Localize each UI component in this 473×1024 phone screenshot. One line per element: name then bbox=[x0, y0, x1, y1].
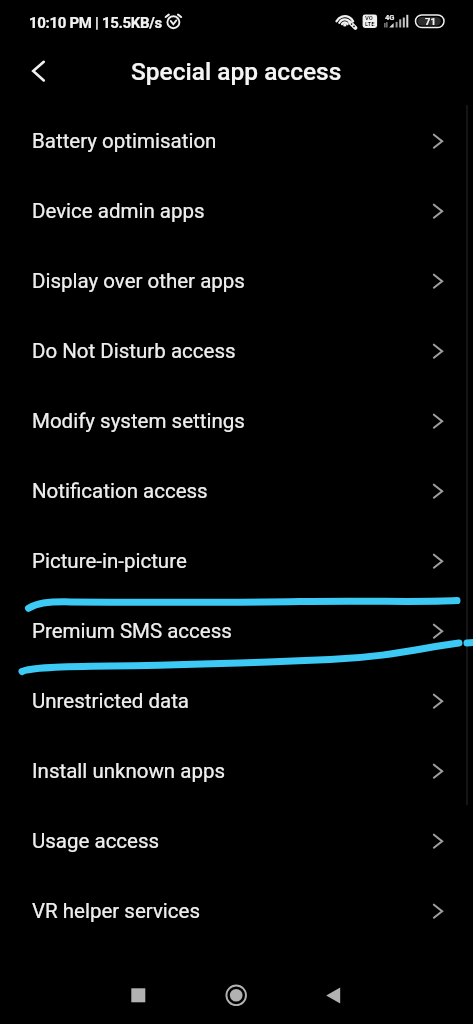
staticText: Notification access bbox=[32, 479, 208, 503]
button[interactable]: Home bbox=[216, 975, 256, 1015]
button[interactable]: Unrestricted data bbox=[0, 666, 473, 736]
staticText: VR helper services bbox=[32, 899, 201, 923]
staticText: Battery optimisation bbox=[32, 129, 217, 153]
staticText: Display over other apps bbox=[32, 269, 245, 293]
staticText: Picture-in-picture bbox=[32, 549, 187, 573]
staticText: Do Not Disturb access bbox=[32, 339, 236, 363]
staticText: Usage access bbox=[32, 829, 160, 853]
button[interactable]: Back bbox=[313, 975, 353, 1015]
button[interactable]: Picture-in-picture bbox=[0, 526, 473, 596]
button[interactable]: Usage access bbox=[0, 806, 473, 876]
button[interactable]: VR helper services bbox=[0, 876, 473, 946]
staticText: 4G bbox=[385, 13, 395, 22]
button[interactable]: Notification access bbox=[0, 456, 473, 526]
staticText: 71 bbox=[425, 16, 436, 27]
button[interactable]: Battery optimisation bbox=[0, 106, 473, 176]
button[interactable]: Recent apps bbox=[118, 975, 158, 1015]
staticText: Install unknown apps bbox=[32, 759, 225, 783]
staticText: LTE bbox=[365, 21, 375, 28]
staticText: Premium SMS access bbox=[32, 619, 232, 643]
staticText: VO bbox=[365, 15, 373, 22]
button[interactable]: Premium SMS access bbox=[0, 596, 473, 666]
staticText: Device admin apps bbox=[32, 199, 205, 223]
staticText: Modify system settings bbox=[32, 409, 245, 433]
staticText: Unrestricted data bbox=[32, 689, 189, 713]
button[interactable]: Modify system settings bbox=[0, 386, 473, 456]
button[interactable]: Navigate up bbox=[16, 48, 62, 94]
staticText: 10:10 PM | 15.5KB/s bbox=[29, 14, 162, 32]
button[interactable]: Display over other apps bbox=[0, 246, 473, 316]
button[interactable]: Do Not Disturb access bbox=[0, 316, 473, 386]
button[interactable]: Install unknown apps bbox=[0, 736, 473, 806]
staticText: Special app access bbox=[131, 57, 342, 86]
button[interactable]: Device admin apps bbox=[0, 176, 473, 246]
